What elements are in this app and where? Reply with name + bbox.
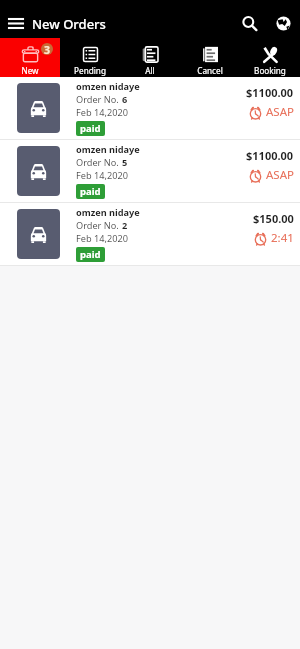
staticText: 5 xyxy=(122,156,128,169)
staticText: omzen nidaye xyxy=(76,80,140,93)
staticText: 2 xyxy=(122,219,128,232)
staticText: $150.00 xyxy=(253,211,294,226)
staticText: ASAP xyxy=(266,167,294,183)
button[interactable]: Menu xyxy=(0,9,32,38)
staticText: Pending xyxy=(74,65,106,76)
staticText: 6 xyxy=(122,93,128,106)
button[interactable]: New xyxy=(0,38,60,77)
staticText: Feb 14,2020 xyxy=(76,106,128,119)
button[interactable]: Language xyxy=(266,9,300,38)
button[interactable]: Pending xyxy=(60,38,120,77)
button[interactable]: Cancel xyxy=(180,38,240,77)
staticText: All xyxy=(145,65,155,76)
staticText: Cancel xyxy=(197,65,223,76)
staticText: Order No. xyxy=(76,219,122,232)
staticText: paid xyxy=(80,185,101,198)
staticText: $1100.00 xyxy=(246,148,294,163)
staticText: ASAP xyxy=(266,104,294,120)
staticText: paid xyxy=(80,248,101,261)
staticText: omzen nidaye xyxy=(76,143,140,156)
staticText: New Orders xyxy=(32,15,106,33)
staticText: omzen nidaye xyxy=(76,206,140,219)
button[interactable]: omzen nidaye xyxy=(0,140,300,202)
staticText: New xyxy=(21,65,39,76)
button[interactable]: Search xyxy=(232,9,266,38)
staticText: Feb 14,2020 xyxy=(76,232,128,245)
button[interactable]: All xyxy=(120,38,180,77)
button[interactable]: omzen nidaye xyxy=(0,77,300,139)
staticText: paid xyxy=(80,122,101,135)
staticText: $1100.00 xyxy=(246,85,294,100)
button[interactable]: omzen nidaye xyxy=(0,203,300,265)
staticText: 2:41 xyxy=(271,230,294,246)
staticText: 3 xyxy=(44,43,51,55)
staticText: Booking xyxy=(254,65,286,76)
staticText: Feb 14,2020 xyxy=(76,169,128,182)
staticText: Order No. xyxy=(76,93,122,106)
button[interactable]: Booking xyxy=(240,38,300,77)
staticText: Order No. xyxy=(76,156,122,169)
